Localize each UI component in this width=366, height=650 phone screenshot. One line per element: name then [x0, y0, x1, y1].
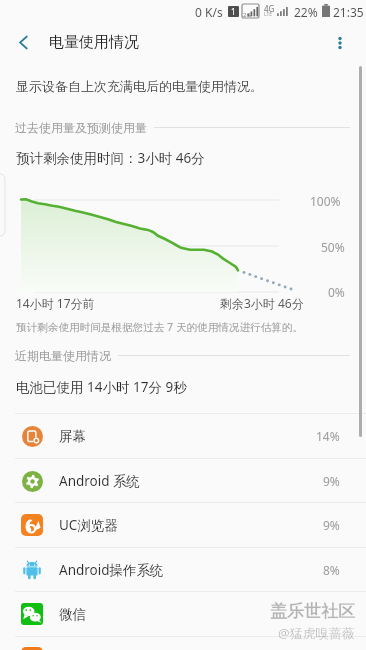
button[interactable]: More options [320, 24, 360, 61]
staticText: 剩余3小时 46分 [220, 295, 304, 311]
staticText: 8% [323, 562, 340, 578]
button[interactable]: 屏幕 [0, 414, 366, 458]
staticText: Android 系统 [59, 472, 141, 490]
staticText: Android操作系统 [59, 561, 164, 579]
staticText: 9% [323, 517, 340, 533]
button[interactable]: Android 系统 [0, 459, 366, 503]
staticText: 14小时 17分前 [16, 295, 95, 311]
staticText: 微信 [59, 606, 86, 623]
button[interactable]: Back [0, 24, 46, 61]
staticText: 9% [323, 473, 340, 489]
staticText: LTE [264, 11, 273, 18]
staticText: 过去使用量及预测使用量 [15, 120, 147, 135]
staticText: 屏幕 [59, 428, 86, 445]
button[interactable]: Android操作系统 [0, 548, 366, 592]
staticText: 2G [243, 11, 251, 19]
staticText: 14% [316, 428, 340, 444]
staticText: 100% [310, 193, 341, 209]
staticText: @猛虎嗅蔷薇 [278, 624, 355, 642]
staticText: 0% [328, 284, 345, 300]
staticText: 0 K/s [195, 4, 223, 20]
staticText: 显示设备自上次充满电后的电量使用情况。 [16, 78, 263, 94]
staticText: 4G [264, 3, 275, 14]
staticText: 盖乐世社区 [270, 601, 355, 622]
button[interactable]: UC浏览器 [0, 503, 366, 547]
staticText: 1 [231, 6, 236, 17]
staticText: 21:35 [333, 4, 364, 20]
staticText: 电量使用情况 [49, 33, 139, 52]
staticText: 预计剩余使用时间：3小时 46分 [16, 149, 205, 167]
staticText: 预计剩余使用时间是根据您过去 7 天的使用情况进行估算的。 [16, 320, 304, 334]
staticText: 近期电量使用情况 [15, 348, 111, 363]
staticText: 50% [321, 239, 345, 255]
staticText: 22% [294, 4, 318, 20]
button[interactable]: 微信 [0, 592, 366, 636]
staticText: UC浏览器 [59, 516, 118, 534]
staticText: 电池已使用 14小时 17分 9秒 [16, 378, 187, 396]
